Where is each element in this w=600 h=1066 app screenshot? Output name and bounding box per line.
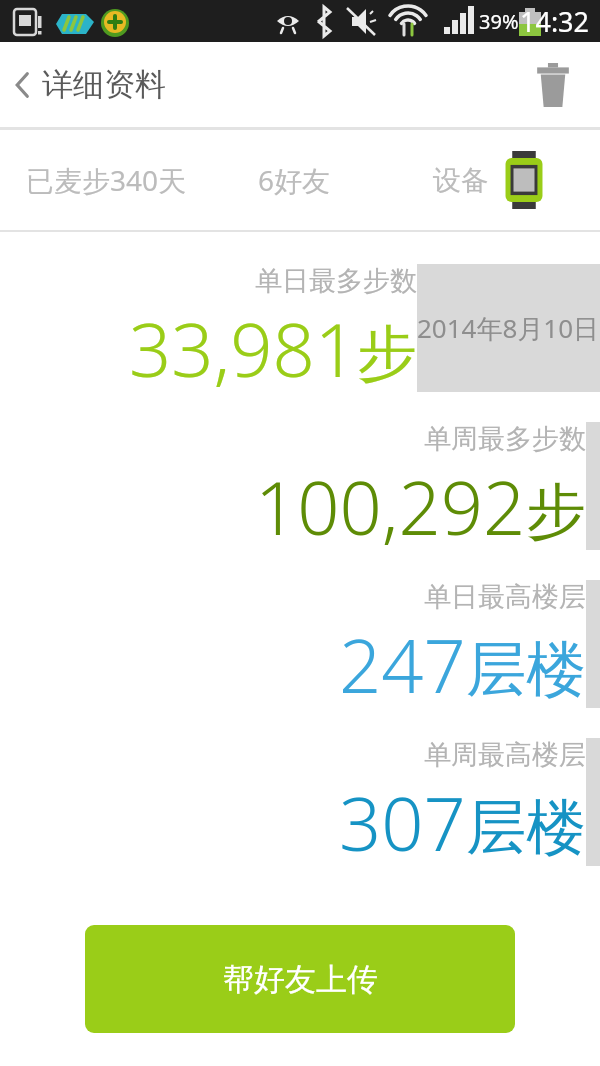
button[interactable]: 单周最高楼层 — [0, 738, 600, 866]
button[interactable]: Delete — [524, 56, 582, 114]
staticText: 33,981 — [129, 298, 357, 392]
button[interactable]: 详细资料 — [0, 65, 178, 104]
staticText: 已麦步340天 — [26, 161, 187, 199]
button[interactable]: 帮好友上传 — [85, 925, 515, 1033]
staticText: 247 — [339, 614, 466, 708]
staticText: 单日最多步数 — [255, 264, 417, 298]
button[interactable]: 2014年8月10日 — [0, 264, 600, 392]
staticText: 步 — [526, 474, 586, 550]
staticText: 层楼 — [466, 632, 586, 708]
staticText: 307 — [339, 772, 466, 866]
staticText: 单日最高楼层 — [424, 580, 586, 614]
button[interactable]: 已麦步340天 — [0, 130, 212, 230]
button[interactable]: 单日最高楼层 — [0, 580, 600, 708]
staticText: 步 — [357, 316, 417, 392]
button[interactable]: 6好友 — [212, 130, 377, 230]
staticText: 详细资料 — [42, 65, 166, 104]
staticText: 6好友 — [258, 161, 331, 199]
button[interactable]: 单周最多步数 — [0, 422, 600, 550]
staticText: 单周最高楼层 — [424, 738, 586, 772]
staticText: 帮好友上传 — [223, 960, 378, 999]
staticText: 2014年8月10日 — [417, 310, 600, 346]
button[interactable]: 设备 — [377, 130, 600, 230]
staticText: 100,292 — [255, 456, 526, 550]
staticText: 单周最多步数 — [424, 422, 586, 456]
staticText: 39% — [479, 8, 519, 35]
staticText: 14:32 — [520, 3, 590, 40]
staticText: 层楼 — [466, 790, 586, 866]
staticText: 设备 — [433, 163, 489, 198]
